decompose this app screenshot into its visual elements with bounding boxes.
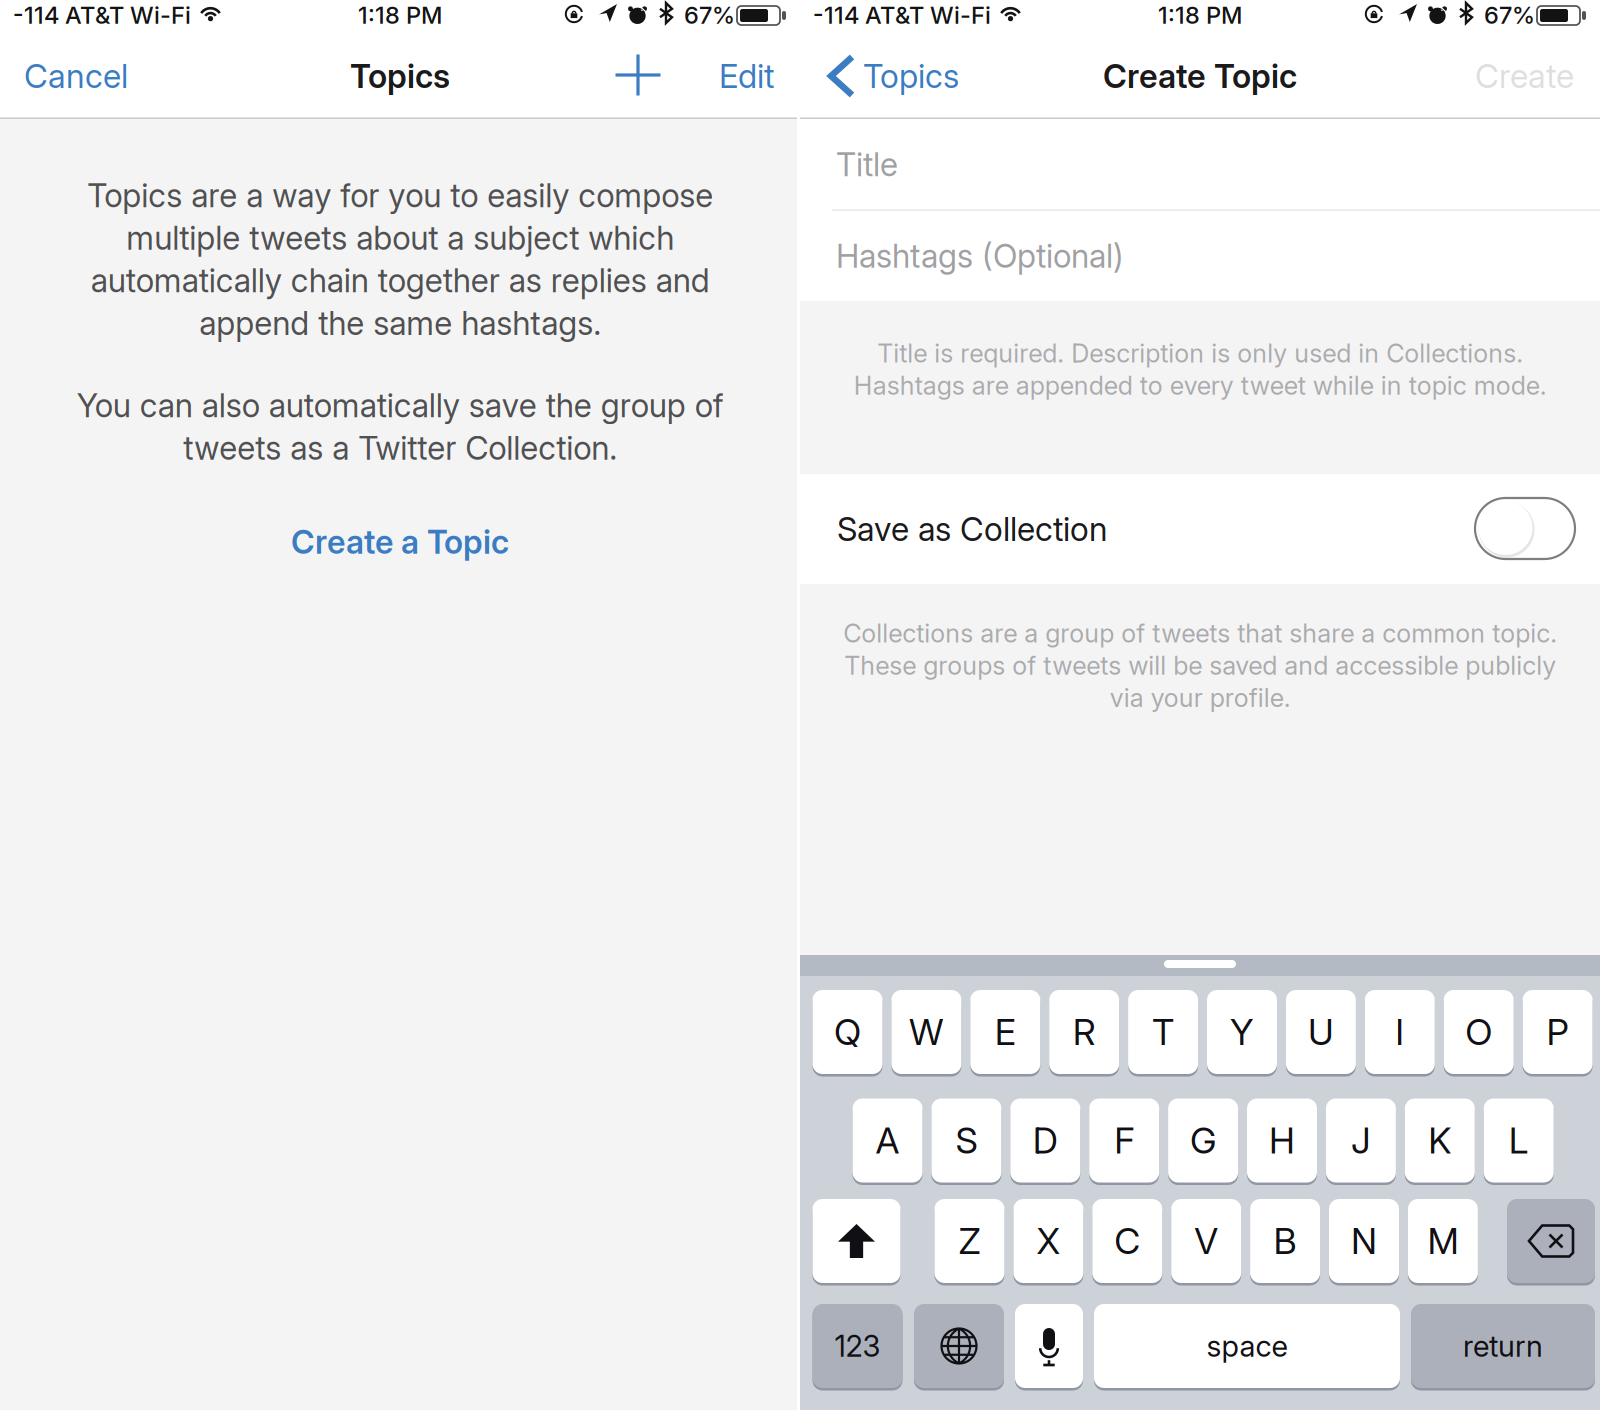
staticText: Cancel [24,56,128,96]
staticText: O [1465,1010,1492,1054]
button[interactable]: J [1326,1098,1396,1185]
staticText: M [1427,1219,1458,1263]
button[interactable]: space [1094,1304,1400,1391]
button[interactable]: T [1128,990,1198,1077]
staticText: L [1509,1119,1529,1162]
staticText: Create a Topic [291,522,509,562]
button[interactable]: New Topic [610,35,666,115]
button[interactable]: R [1049,990,1119,1077]
staticText: T [1152,1010,1174,1054]
staticText: Create [1475,56,1574,96]
button[interactable]: S [931,1098,1001,1185]
button[interactable]: E [970,990,1040,1077]
staticText: A [875,1119,899,1162]
staticText: Save as Collection [837,509,1107,549]
button[interactable]: F [1089,1098,1159,1185]
staticText: G [1190,1119,1216,1162]
button[interactable]: Z [934,1199,1004,1286]
staticText: C [1114,1219,1140,1263]
staticText: Edit [719,56,774,96]
button[interactable]: M [1408,1199,1478,1286]
staticText: Title is required. Description is only u… [853,338,1546,401]
button[interactable]: V [1171,1199,1241,1286]
staticText: Collections are a group of tweets that s… [843,618,1557,713]
staticText: -114 AT&T Wi-Fi [13,1,191,29]
staticText: R [1073,1010,1096,1054]
button[interactable]: Delete [1507,1199,1595,1286]
button[interactable]: N [1329,1199,1399,1286]
staticText: 1:18 PM [1158,1,1242,29]
staticText: P [1547,1010,1569,1054]
staticText: W [909,1010,944,1054]
button[interactable]: B [1250,1199,1320,1286]
button[interactable]: return [1411,1304,1595,1391]
button[interactable]: Topics [828,36,1008,116]
staticText: Y [1230,1010,1254,1054]
staticText: Title [836,145,898,184]
staticText: Q [834,1010,861,1054]
button[interactable]: 123 [812,1304,902,1391]
staticText: 67% [1484,1,1535,29]
button[interactable]: P [1523,990,1593,1077]
button[interactable]: Create a Topic [200,521,600,563]
button[interactable]: D [1010,1098,1080,1185]
staticText: 67% [684,1,735,29]
staticText: X [1036,1219,1060,1263]
button[interactable]: W [891,990,961,1077]
button[interactable]: Edit [690,36,774,116]
staticText: K [1428,1119,1451,1162]
staticText: 1:18 PM [358,1,442,29]
button[interactable]: Q [812,990,882,1077]
staticText: V [1194,1219,1218,1263]
staticText: Z [958,1219,980,1263]
staticText: return [1463,1328,1543,1364]
staticText: Create Topic [1103,56,1297,96]
button[interactable]: Create [1440,36,1574,116]
button[interactable]: U [1286,990,1356,1077]
staticText: E [995,1010,1016,1054]
staticText: J [1351,1119,1371,1162]
button[interactable]: H [1247,1098,1317,1185]
staticText: Hashtags (Optional) [836,236,1124,275]
button[interactable]: L [1484,1098,1554,1185]
staticText: F [1114,1119,1134,1162]
staticText: I [1395,1010,1404,1054]
staticText: Topics [863,56,959,96]
button[interactable]: Save as Collection [1475,498,1575,559]
staticText: 123 [834,1328,880,1364]
staticText: You can also automatically save the grou… [76,386,723,468]
button[interactable]: I [1365,990,1435,1077]
button[interactable]: X [1013,1199,1083,1286]
button[interactable]: Next keyboard [914,1304,1004,1391]
button[interactable]: Y [1207,990,1277,1077]
staticText: Topics are a way for you to easily compo… [87,176,713,343]
staticText: S [955,1119,977,1162]
staticText: B [1274,1219,1297,1263]
button[interactable]: C [1092,1199,1162,1286]
staticText: N [1351,1219,1377,1263]
button[interactable]: A [852,1098,922,1185]
button[interactable]: Cancel [24,36,184,116]
button[interactable]: Dictate [1015,1304,1083,1391]
staticText: D [1033,1119,1058,1162]
button[interactable]: K [1405,1098,1475,1185]
button[interactable]: O [1444,990,1514,1077]
staticText: H [1269,1119,1295,1162]
staticText: space [1206,1328,1287,1364]
staticText: Topics [350,56,450,96]
button[interactable]: G [1168,1098,1238,1185]
button[interactable]: Shift [812,1199,900,1286]
staticText: U [1308,1010,1334,1054]
staticText: -114 AT&T Wi-Fi [813,1,991,29]
